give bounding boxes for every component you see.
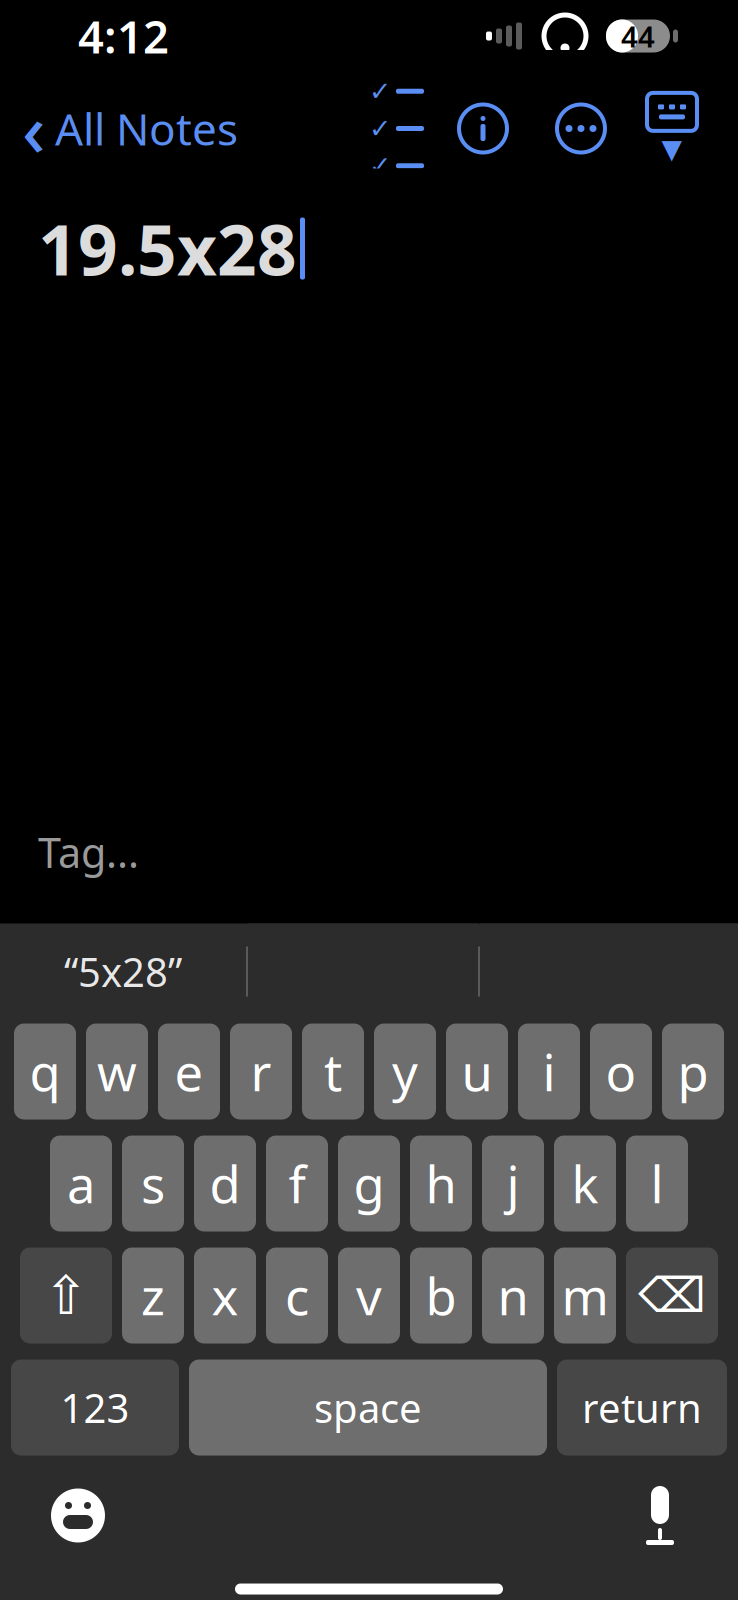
button[interactable]: z bbox=[122, 1247, 184, 1343]
staticText: 44 bbox=[621, 16, 655, 55]
staticText: b bbox=[425, 1262, 456, 1329]
staticText: w bbox=[97, 1038, 137, 1105]
button[interactable]: i bbox=[518, 1023, 580, 1119]
staticText: n bbox=[497, 1262, 528, 1329]
staticText: f bbox=[288, 1150, 305, 1217]
staticText: ⇧ bbox=[43, 1265, 88, 1326]
staticText: r bbox=[250, 1038, 271, 1105]
button[interactable]: f bbox=[266, 1135, 328, 1231]
button[interactable]: l bbox=[626, 1135, 688, 1231]
staticText: s bbox=[141, 1150, 165, 1217]
staticText: y bbox=[392, 1038, 418, 1105]
staticText: g bbox=[353, 1150, 384, 1217]
button[interactable]: c bbox=[266, 1247, 328, 1343]
staticText: x bbox=[211, 1262, 238, 1329]
button[interactable]: s bbox=[122, 1135, 184, 1231]
staticText: ‹ bbox=[22, 81, 45, 176]
button[interactable]: e bbox=[158, 1023, 220, 1119]
button[interactable]: g bbox=[338, 1135, 400, 1231]
button[interactable]: Info bbox=[434, 96, 532, 160]
staticText: i bbox=[542, 1038, 555, 1105]
button[interactable]: Hide Keyboard bbox=[630, 93, 714, 163]
button[interactable]: d bbox=[194, 1135, 256, 1231]
staticText: 123 bbox=[60, 1381, 129, 1434]
button[interactable]: m bbox=[554, 1247, 616, 1343]
staticText: ✓ bbox=[369, 113, 391, 144]
button[interactable]: y bbox=[374, 1023, 436, 1119]
button[interactable]: space bbox=[189, 1359, 547, 1455]
staticText: o bbox=[605, 1038, 636, 1105]
button[interactable]: return bbox=[557, 1359, 727, 1455]
button[interactable]: o bbox=[590, 1023, 652, 1119]
button[interactable]: h bbox=[410, 1135, 472, 1231]
button[interactable]: More bbox=[532, 96, 630, 160]
staticText: return bbox=[582, 1381, 702, 1434]
staticText: h bbox=[425, 1150, 456, 1217]
button[interactable]: Checklist bbox=[362, 96, 434, 160]
staticText: a bbox=[67, 1150, 95, 1217]
staticText: k bbox=[571, 1150, 598, 1217]
button[interactable]: a bbox=[50, 1135, 112, 1231]
staticText: d bbox=[209, 1150, 240, 1217]
button[interactable]: p bbox=[662, 1023, 724, 1119]
button[interactable]: Emoji bbox=[30, 1467, 126, 1563]
staticText: u bbox=[461, 1038, 492, 1105]
button[interactable]: r bbox=[230, 1023, 292, 1119]
staticText: 4:12 bbox=[78, 6, 169, 66]
staticText: j bbox=[506, 1150, 519, 1217]
button[interactable]: “5x28” bbox=[0, 923, 246, 1019]
button[interactable]: Dictate bbox=[612, 1467, 708, 1563]
staticText: q bbox=[29, 1038, 60, 1105]
staticText: “5x28” bbox=[64, 945, 182, 998]
staticText: ▼ bbox=[661, 134, 682, 164]
staticText: ⌫ bbox=[638, 1268, 706, 1323]
button[interactable]: 123 bbox=[11, 1359, 179, 1455]
button[interactable]: x bbox=[194, 1247, 256, 1343]
button[interactable]: Shift bbox=[20, 1247, 112, 1343]
staticText: e bbox=[174, 1038, 203, 1105]
button[interactable]: Tag... bbox=[0, 811, 738, 893]
button[interactable]: n bbox=[482, 1247, 544, 1343]
staticText: z bbox=[141, 1262, 165, 1329]
button[interactable]: Delete bbox=[626, 1247, 718, 1343]
button[interactable]: t bbox=[302, 1023, 364, 1119]
button[interactable]: u bbox=[446, 1023, 508, 1119]
button[interactable]: k bbox=[554, 1135, 616, 1231]
staticText: p bbox=[677, 1038, 708, 1105]
staticText: ✓ bbox=[369, 151, 391, 181]
button[interactable]: b bbox=[410, 1247, 472, 1343]
button[interactable]: w bbox=[86, 1023, 148, 1119]
staticText: ✓ bbox=[369, 76, 391, 106]
staticText: v bbox=[356, 1262, 382, 1329]
staticText: 19.5x28 bbox=[38, 202, 297, 295]
staticText: Tag... bbox=[38, 825, 139, 879]
staticText: All Notes bbox=[55, 99, 238, 158]
button[interactable]: v bbox=[338, 1247, 400, 1343]
staticText: space bbox=[314, 1381, 422, 1434]
staticText: m bbox=[561, 1262, 608, 1329]
button[interactable]: j bbox=[482, 1135, 544, 1231]
button[interactable]: ‹ bbox=[0, 73, 238, 184]
staticText: l bbox=[650, 1150, 663, 1217]
staticText: c bbox=[285, 1262, 309, 1329]
staticText: t bbox=[324, 1038, 342, 1105]
button[interactable]: q bbox=[14, 1023, 76, 1119]
